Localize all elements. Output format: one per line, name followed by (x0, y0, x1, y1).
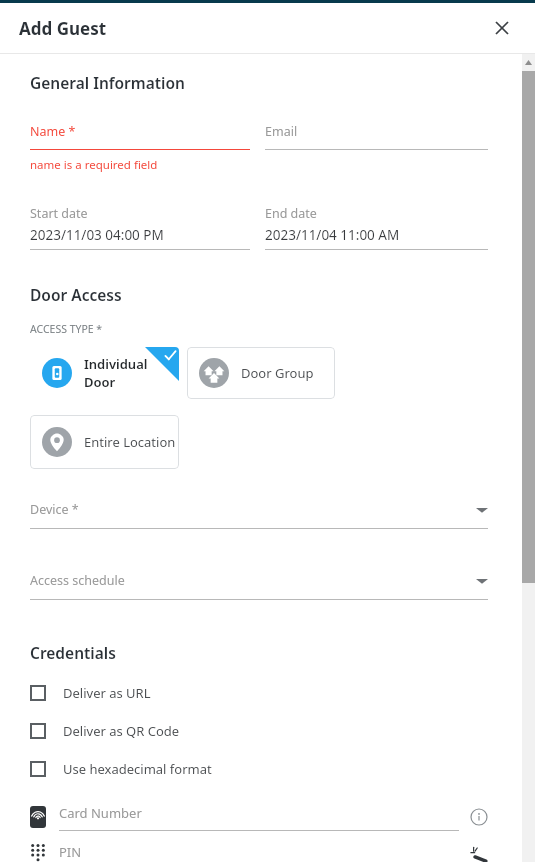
staticText: Entire Location (84, 433, 176, 451)
staticText: ACCESS TYPE * (30, 322, 103, 336)
staticText: Door Group (241, 364, 314, 382)
staticText: Use hexadecimal format (63, 760, 212, 778)
button[interactable]: Door Group (187, 347, 335, 399)
button[interactable]: Info (470, 808, 488, 826)
staticText: Email (265, 123, 298, 140)
staticText: 2023/11/04 11:00 AM (265, 226, 400, 244)
staticText: Card Number (59, 804, 142, 822)
button[interactable]: Generate PIN (470, 844, 488, 862)
button[interactable]: Start date (30, 205, 250, 250)
staticText: Start date (30, 205, 88, 222)
staticText: Device * (30, 501, 79, 518)
button[interactable]: Close (489, 15, 515, 41)
staticText: Deliver as QR Code (63, 722, 180, 740)
button[interactable]: Individual Door (30, 347, 179, 399)
staticText: Credentials (30, 642, 116, 663)
staticText: Deliver as URL (63, 684, 151, 702)
staticText: name is a required field (30, 157, 158, 173)
staticText: Add Guest (19, 17, 107, 40)
staticText: Door Access (30, 284, 122, 305)
staticText: Name * (30, 123, 76, 140)
staticText: General Information (30, 72, 185, 93)
button[interactable]: Deliver as QR Code (30, 712, 488, 750)
button[interactable]: Device * (30, 501, 488, 529)
staticText: End date (265, 205, 317, 222)
button[interactable]: End date (265, 205, 488, 250)
button[interactable]: PIN (30, 843, 488, 862)
button[interactable]: Access schedule (30, 572, 488, 600)
button[interactable]: Email (265, 123, 488, 150)
staticText: Access schedule (30, 572, 125, 589)
staticText: PIN (59, 843, 82, 861)
button[interactable]: Use hexadecimal format (30, 750, 488, 788)
button[interactable]: Name * (30, 123, 250, 173)
button[interactable]: Entire Location (30, 415, 179, 469)
staticText: Individual Door (84, 355, 179, 391)
button[interactable]: Deliver as URL (30, 674, 488, 712)
button[interactable]: Card Number (30, 800, 488, 834)
staticText: 2023/11/03 04:00 PM (30, 226, 164, 244)
